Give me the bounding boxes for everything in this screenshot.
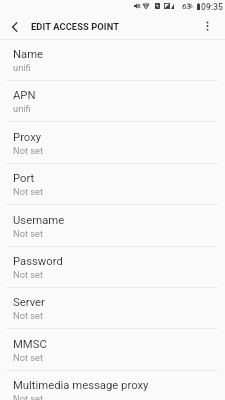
staticText: Not set xyxy=(13,269,44,280)
staticText: Not set xyxy=(13,352,44,363)
button[interactable]: Multimedia message proxy xyxy=(0,371,225,400)
staticText: Name xyxy=(13,48,44,61)
button[interactable]: Server xyxy=(0,288,225,329)
staticText: unifi xyxy=(13,62,31,73)
staticText: EDIT ACCESS POINT xyxy=(31,21,120,32)
button[interactable]: APN xyxy=(0,81,225,122)
staticText: Not set xyxy=(13,310,44,321)
staticText: 09:35 xyxy=(201,2,223,12)
staticText: 63 xyxy=(182,2,192,11)
staticText: Username xyxy=(13,214,65,227)
staticText: Not set xyxy=(13,393,44,400)
button[interactable]: Password xyxy=(0,247,225,288)
staticText: Not set xyxy=(13,186,44,197)
staticText: Not set xyxy=(13,228,44,239)
staticText: MMSC xyxy=(13,338,47,351)
staticText: APN xyxy=(13,89,36,102)
staticText: Multimedia message proxy xyxy=(13,379,149,392)
staticText: % xyxy=(188,2,193,10)
button[interactable]: More options xyxy=(195,13,220,38)
button[interactable]: Port xyxy=(0,164,225,205)
staticText: Server xyxy=(13,296,45,309)
staticText: Not set xyxy=(13,145,44,156)
button[interactable]: Proxy xyxy=(0,123,225,164)
staticText: Password xyxy=(13,255,63,268)
button[interactable]: Navigate up xyxy=(2,14,27,39)
button[interactable]: Username xyxy=(0,206,225,247)
staticText: unifi xyxy=(13,103,31,114)
staticText: Proxy xyxy=(13,131,42,144)
button[interactable]: MMSC xyxy=(0,330,225,371)
button[interactable]: Name xyxy=(0,40,225,81)
staticText: Port xyxy=(13,172,35,185)
